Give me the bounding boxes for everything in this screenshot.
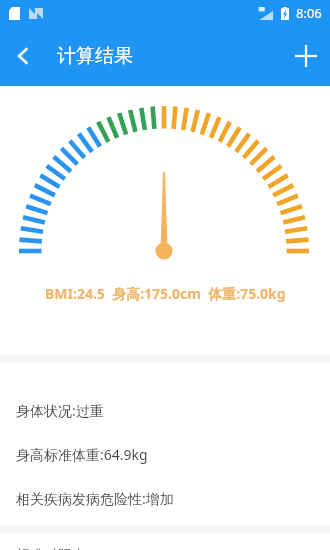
button[interactable]: 身高标准体重:64.9kg bbox=[0, 432, 330, 476]
staticText: 身高标准体重:64.9kg bbox=[16, 445, 148, 464]
button[interactable]: 身体状况:过重 bbox=[0, 388, 330, 432]
staticText: BMI:24.5 身高:175.0cm 体重:75.0kg bbox=[45, 284, 286, 303]
staticText: 相关疾病发病危险性:增加 bbox=[16, 489, 174, 508]
staticText: 身体状况:过重 bbox=[16, 401, 104, 420]
staticText: 计算结果 bbox=[57, 44, 133, 68]
staticText: 8:06 bbox=[296, 4, 322, 22]
button[interactable]: 标准对照表 bbox=[0, 533, 330, 550]
button[interactable]: Back bbox=[0, 33, 46, 79]
button[interactable]: 相关疾病发病危险性:增加 bbox=[0, 476, 330, 520]
staticText: 标准对照表 bbox=[16, 547, 86, 550]
button[interactable]: Add bbox=[282, 32, 330, 80]
